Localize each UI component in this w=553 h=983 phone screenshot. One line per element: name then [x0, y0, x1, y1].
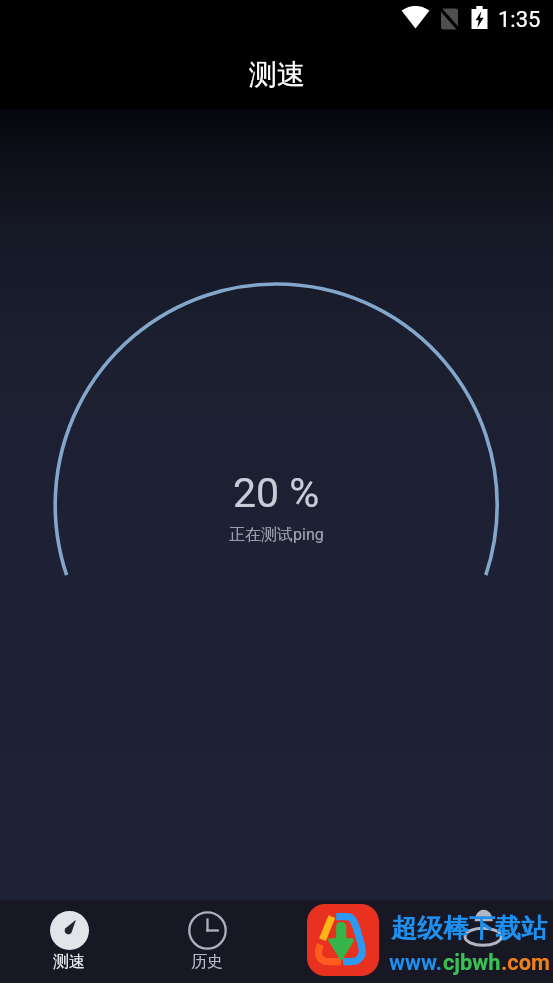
- staticText: 历史: [191, 952, 223, 972]
- button[interactable]: 测速: [29, 900, 109, 983]
- staticText: 正在测试ping: [229, 525, 324, 545]
- button[interactable]: 历史: [167, 900, 247, 983]
- staticText: 测速: [249, 57, 305, 92]
- staticText: 20 %: [233, 469, 320, 517]
- staticText: www.: [389, 950, 443, 976]
- staticText: 测速: [53, 952, 85, 972]
- staticText: .com: [501, 950, 550, 976]
- button[interactable]: 超级棒下载站 www.cjbwh.com: [296, 900, 553, 983]
- staticText: 超级棒下载站: [391, 912, 547, 945]
- staticText: 1:35: [498, 7, 541, 33]
- staticText: cjbwh: [443, 950, 501, 976]
